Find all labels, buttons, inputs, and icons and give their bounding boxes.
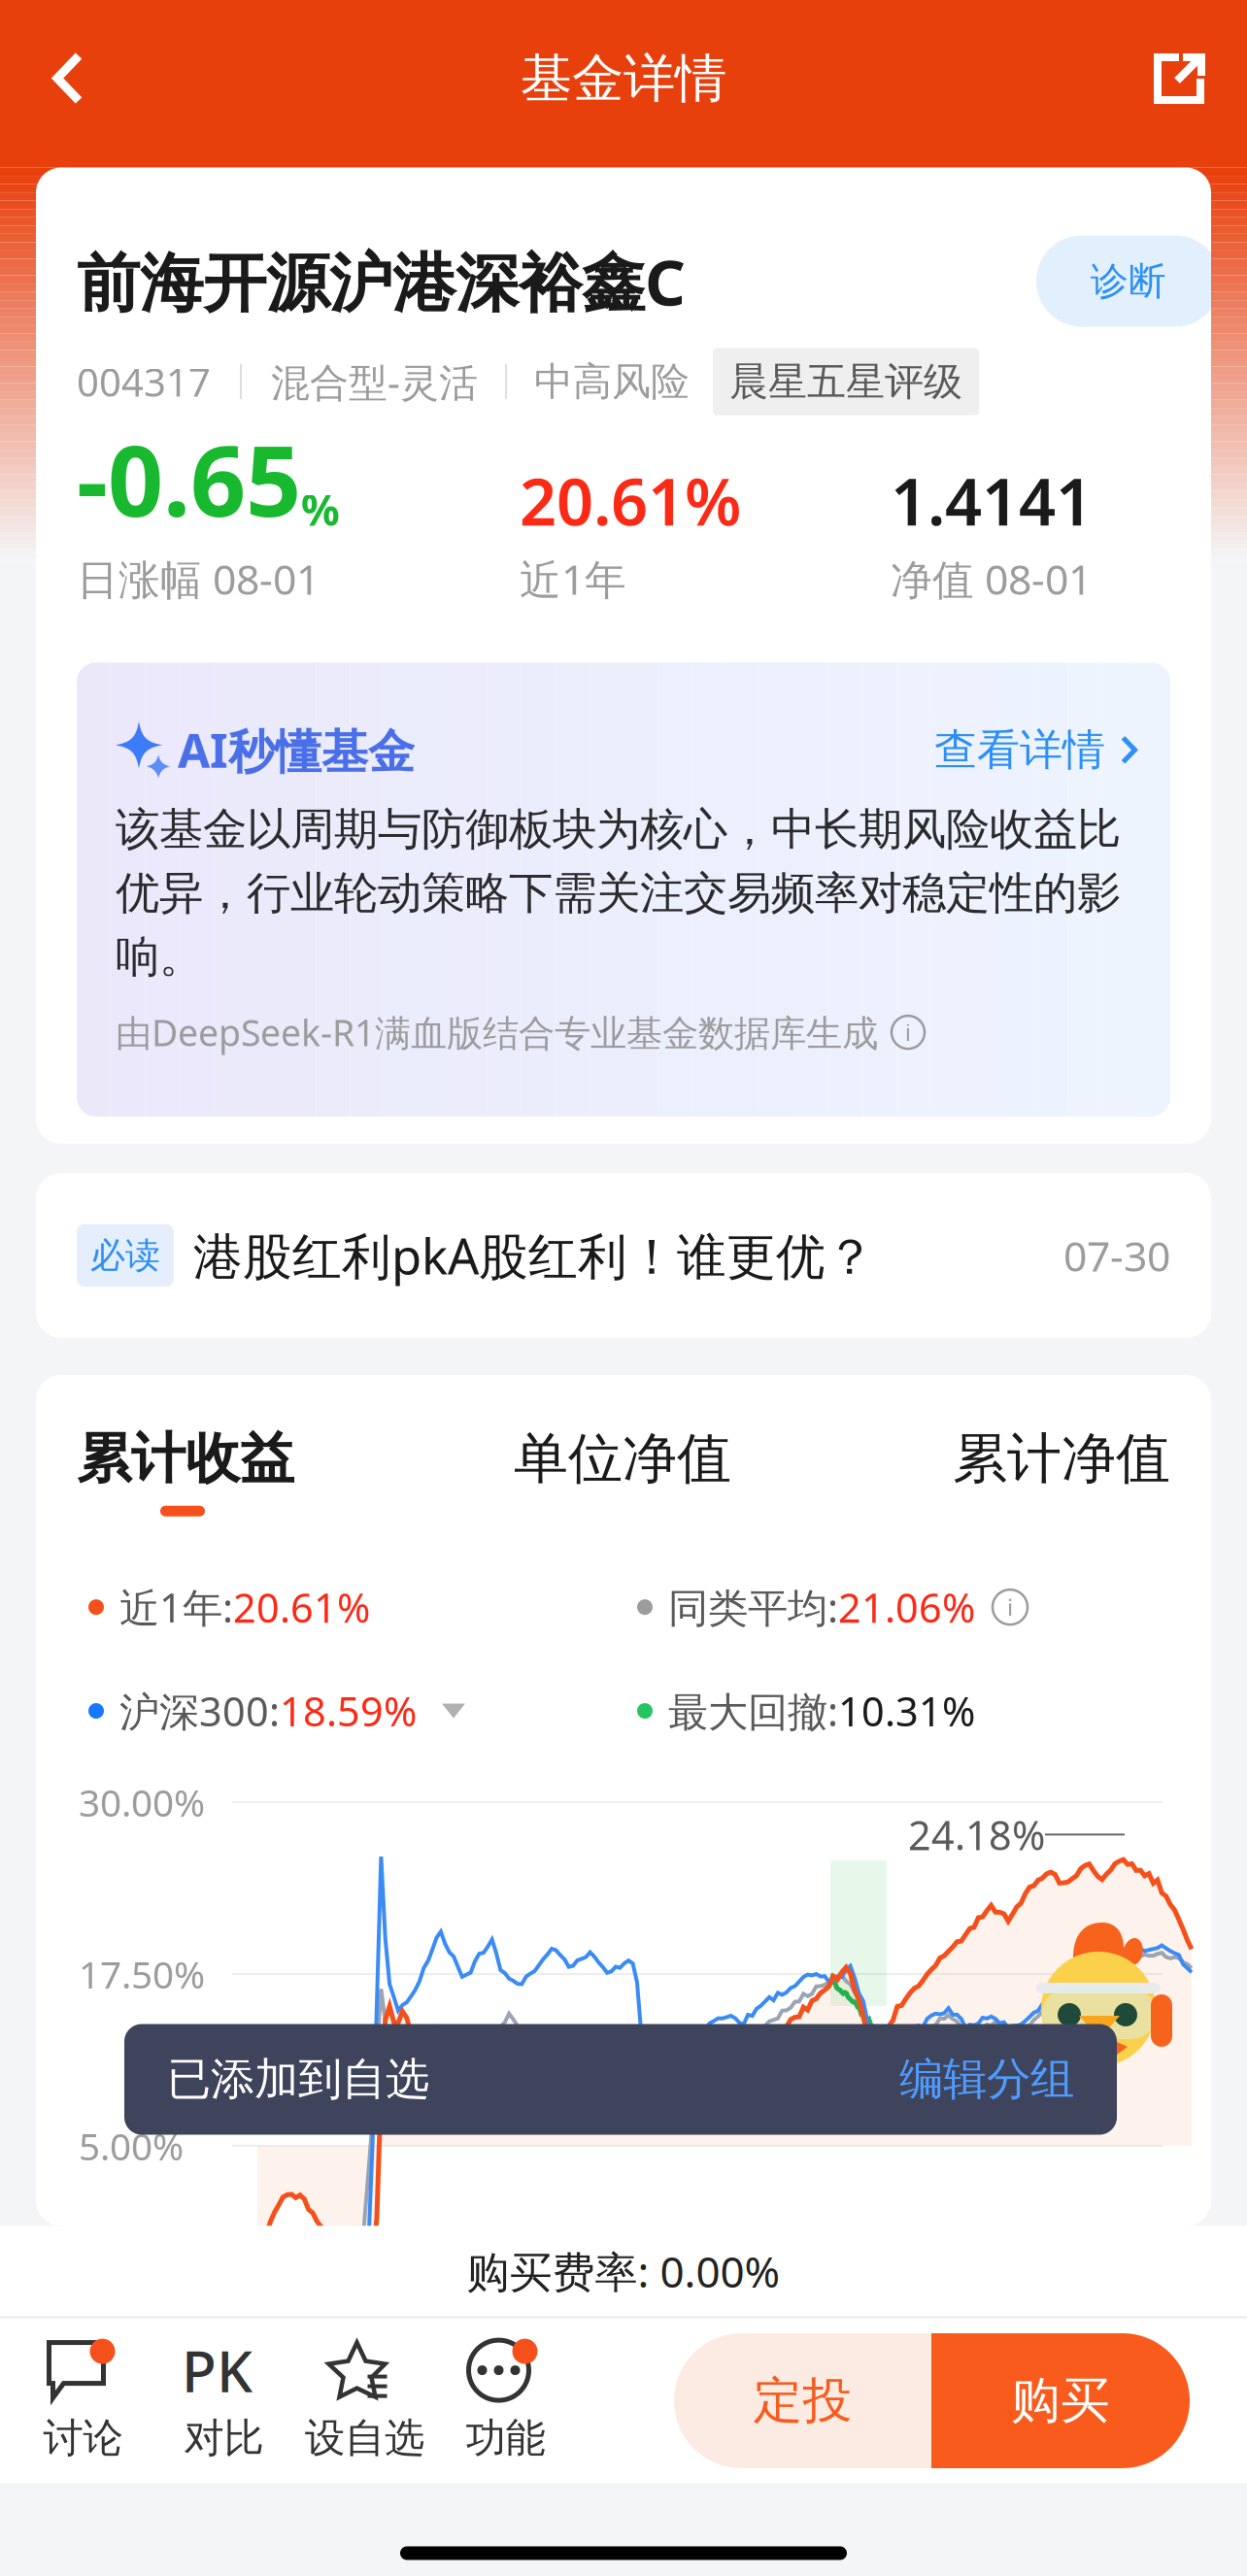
- button[interactable]: 编辑分组: [899, 2052, 1074, 2106]
- button[interactable]: 分享: [1116, 0, 1242, 158]
- staticText: 日涨幅 08-01: [77, 551, 320, 606]
- staticText: 由DeepSeek-R1满血版结合专业基金数据库生成: [116, 1008, 878, 1056]
- staticText: 晨星五星评级: [729, 358, 962, 405]
- staticText: 净值 08-01: [891, 551, 1092, 606]
- staticText: 必读: [90, 1234, 160, 1277]
- staticText: 5.00%: [79, 2121, 184, 2171]
- button[interactable]: 单位净值: [514, 1425, 953, 1492]
- staticText: 混合型-灵活: [271, 356, 478, 407]
- staticText: 讨论: [43, 2413, 123, 2463]
- button[interactable]: 查看详情: [934, 724, 1137, 776]
- staticText: 单位净值: [514, 1425, 731, 1492]
- staticText: 沪深300:: [119, 1684, 280, 1738]
- staticText: 中高风险: [534, 358, 690, 405]
- button[interactable]: 累计收益: [77, 1425, 514, 1516]
- staticText: 21.06%: [838, 1580, 975, 1634]
- staticText: AI秒懂基金: [178, 719, 415, 781]
- staticText: 累计收益: [77, 1425, 294, 1492]
- staticText: 1.4141: [891, 457, 1093, 543]
- staticText: 17.50%: [79, 1949, 205, 1999]
- staticText: 该基金以周期与防御板块为核心，中长期风险收益比优异，行业轮动策略下需关注交易频率…: [116, 802, 1121, 984]
- staticText: 对比: [184, 2413, 264, 2463]
- staticText: 功能: [466, 2413, 545, 2463]
- staticText: 港股红利pkA股红利！谁更优？: [193, 1223, 875, 1288]
- staticText: i: [1007, 1592, 1013, 1623]
- staticText: 20.61%: [520, 457, 741, 543]
- button[interactable]: 设自选: [294, 2339, 435, 2463]
- staticText: 18.59%: [280, 1684, 417, 1738]
- staticText: 近1年:: [119, 1580, 233, 1634]
- staticText: 累计净值: [953, 1425, 1170, 1492]
- staticText: 编辑分组: [899, 2052, 1074, 2106]
- button[interactable]: 定投: [674, 2333, 931, 2468]
- staticText: -0.65: [77, 415, 301, 543]
- staticText: 24.18%: [908, 1808, 1045, 1861]
- staticText: 购买费率: 0.00%: [467, 2243, 780, 2299]
- staticText: 同类平均:: [668, 1580, 838, 1634]
- staticText: 购买: [1011, 2371, 1110, 2431]
- staticText: 最大回撤:: [668, 1684, 838, 1738]
- button[interactable]: 诊断: [1036, 235, 1221, 327]
- button[interactable]: 返回: [5, 0, 131, 158]
- staticText: 已添加到自选: [167, 2052, 429, 2106]
- button[interactable]: 必读: [36, 1173, 1211, 1338]
- button[interactable]: PK: [153, 2339, 294, 2463]
- staticText: PK: [182, 2332, 253, 2408]
- button[interactable]: 购买: [931, 2333, 1190, 2468]
- staticText: 10.31%: [838, 1684, 975, 1738]
- staticText: i: [905, 1018, 911, 1047]
- staticText: 定投: [753, 2371, 852, 2431]
- button[interactable]: 累计净值: [953, 1425, 1170, 1492]
- staticText: 设自选: [305, 2413, 424, 2463]
- staticText: 查看详情: [934, 724, 1105, 776]
- staticText: 前海开源沪港深裕鑫C: [77, 239, 686, 323]
- staticText: 20.61%: [233, 1580, 370, 1634]
- staticText: 基金详情: [521, 47, 726, 110]
- staticText: 近1年: [520, 551, 626, 606]
- staticText: 07-30: [1063, 1228, 1170, 1283]
- staticText: %: [301, 481, 340, 538]
- staticText: 诊断: [1091, 258, 1166, 304]
- staticText: 004317: [77, 356, 211, 407]
- staticText: 30.00%: [79, 1777, 205, 1827]
- button[interactable]: 讨论: [13, 2339, 153, 2463]
- button[interactable]: 功能: [435, 2339, 576, 2463]
